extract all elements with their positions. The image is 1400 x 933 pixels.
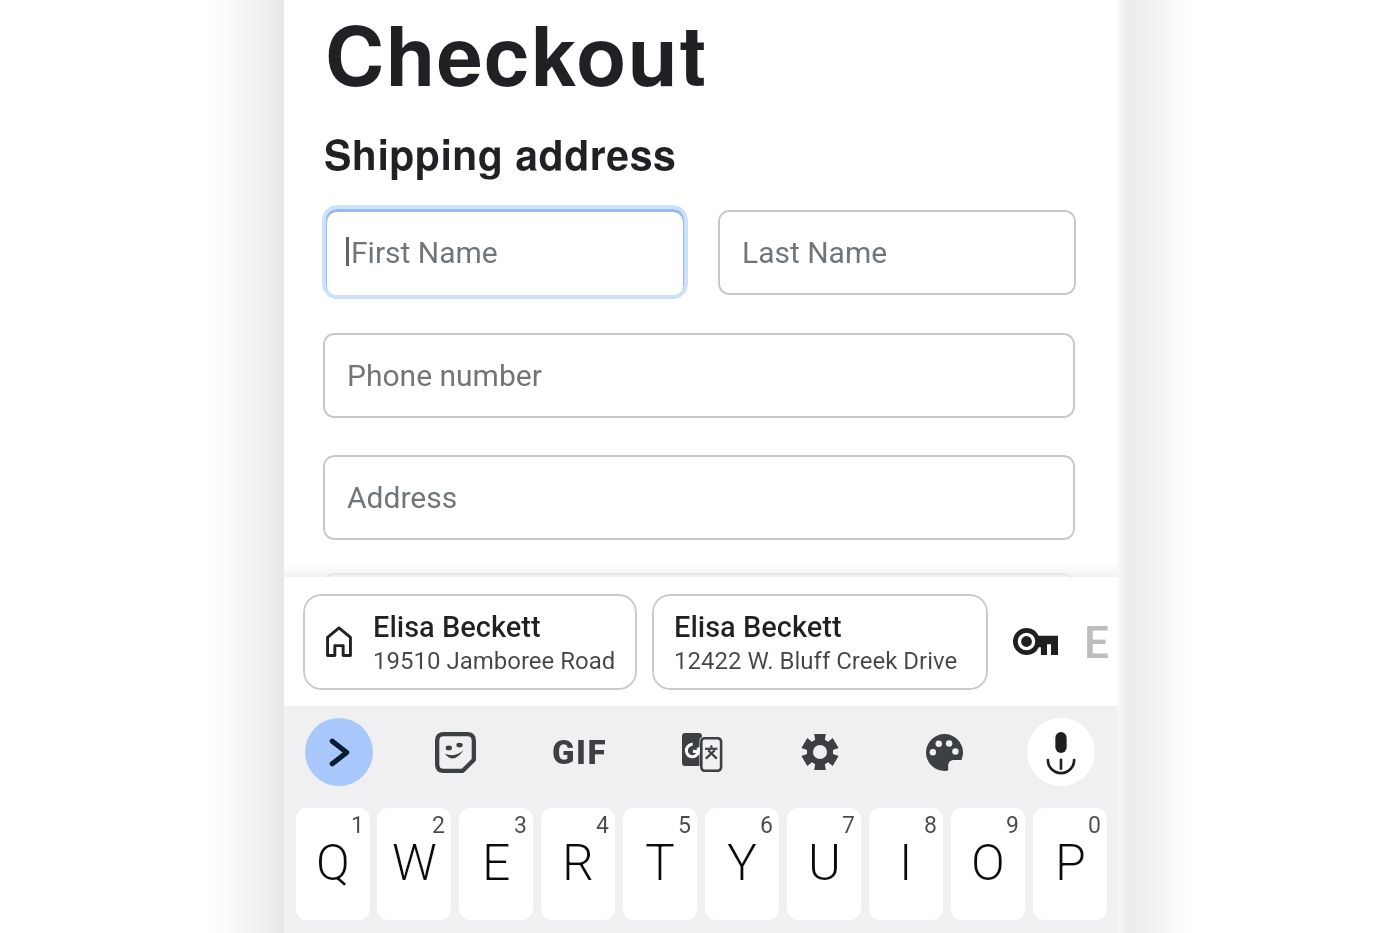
staticText: 0	[1088, 812, 1101, 839]
staticText: O	[971, 834, 1005, 893]
staticText: 8	[924, 812, 937, 839]
button[interactable]: Last Name	[718, 210, 1076, 295]
staticText: Y	[727, 834, 757, 893]
staticText: 9	[1006, 812, 1019, 839]
staticText: 1	[351, 812, 364, 839]
staticText: 2	[432, 812, 445, 839]
button[interactable]: 4	[541, 808, 615, 920]
button[interactable]: City	[323, 573, 1075, 658]
button[interactable]: Phone number	[323, 333, 1075, 418]
button[interactable]: First Name	[322, 205, 688, 299]
staticText: First Name	[351, 235, 498, 270]
staticText: Last Name	[742, 235, 888, 270]
button[interactable]: Themes	[910, 718, 978, 786]
staticText: E	[1084, 617, 1109, 661]
button[interactable]: Voice input	[1027, 718, 1095, 786]
button[interactable]: Keyboard settings	[786, 718, 854, 786]
button[interactable]: Expand toolbar	[305, 718, 373, 786]
staticText: Elisa Beckett	[674, 610, 842, 644]
staticText: I	[899, 834, 913, 893]
button[interactable]: 2	[377, 808, 451, 920]
button[interactable]: 8	[869, 808, 943, 920]
staticText: 7	[842, 812, 855, 839]
button[interactable]: Translate	[667, 718, 735, 786]
staticText: Phone number	[347, 358, 542, 393]
staticText: E	[482, 834, 511, 893]
button[interactable]: 5	[623, 808, 697, 920]
button[interactable]: 3	[459, 808, 533, 920]
button[interactable]: 9	[951, 808, 1025, 920]
staticText: 3	[514, 812, 527, 839]
staticText: GIF	[552, 733, 608, 772]
button[interactable]: 1	[296, 808, 370, 920]
button[interactable]: 6	[705, 808, 779, 920]
staticText: T	[645, 834, 675, 893]
button[interactable]: 7	[787, 808, 861, 920]
staticText: 5	[678, 812, 691, 839]
staticText: Checkout	[325, 0, 708, 111]
staticText: R	[562, 834, 594, 893]
button[interactable]: GIF	[546, 718, 614, 786]
staticText: U	[808, 834, 841, 893]
button[interactable]: Elisa Beckett	[303, 594, 637, 690]
staticText: 4	[596, 812, 609, 839]
staticText: Q	[316, 834, 350, 893]
button[interactable]: Saved passwords	[1006, 612, 1064, 670]
staticText: Shipping address	[324, 124, 677, 183]
staticText: W	[392, 834, 437, 893]
button[interactable]: Stickers	[421, 718, 489, 786]
staticText: Elisa Beckett	[373, 610, 541, 644]
button[interactable]: 0	[1033, 808, 1107, 920]
staticText: 19510 Jamboree Road	[373, 647, 616, 675]
staticText: P	[1055, 834, 1086, 893]
staticText: Address	[347, 480, 458, 515]
staticText: 12422 W. Bluff Creek Drive	[674, 647, 958, 675]
staticText: 6	[760, 812, 773, 839]
button[interactable]: Elisa Beckett	[652, 594, 988, 690]
button[interactable]: Address	[323, 455, 1075, 540]
